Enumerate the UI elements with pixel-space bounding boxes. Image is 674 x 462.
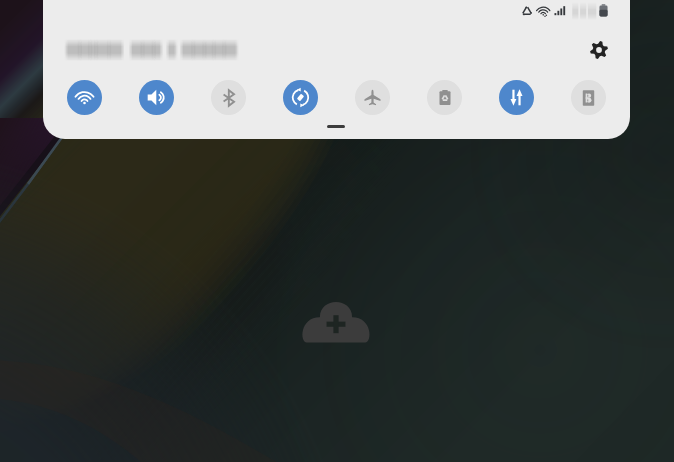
button[interactable]: Wi-Fi bbox=[67, 80, 102, 115]
button[interactable]: Bluetooth bbox=[211, 80, 246, 115]
button[interactable]: Auto rotate bbox=[283, 80, 318, 115]
other: Add to cloud bbox=[301, 296, 371, 343]
button[interactable]: Mobile data bbox=[499, 80, 534, 115]
button[interactable]: Settings bbox=[582, 33, 616, 67]
button[interactable]: Flight mode bbox=[355, 80, 390, 115]
button[interactable]: Power saving bbox=[427, 80, 462, 115]
button[interactable]: Blue light filter bbox=[571, 80, 606, 115]
button[interactable]: Sound bbox=[139, 80, 174, 115]
